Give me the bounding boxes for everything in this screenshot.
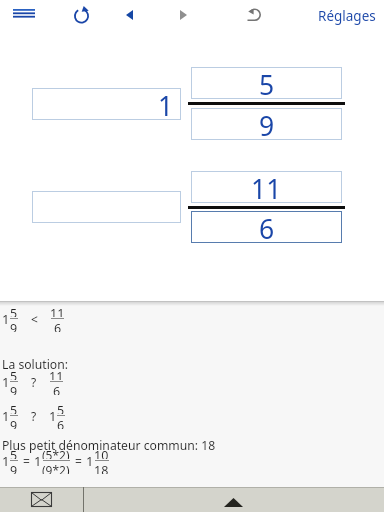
button[interactable]: [5, 1, 43, 27]
button[interactable]: [66, 1, 96, 29]
staticText: =: [75, 453, 82, 469]
staticText: 9: [10, 462, 18, 474]
staticText: 6: [57, 417, 65, 429]
staticText: (9*2): [42, 462, 70, 474]
staticText: 1: [2, 452, 10, 470]
staticText: 6: [259, 211, 275, 243]
button[interactable]: [32, 191, 181, 223]
staticText: 9: [10, 383, 18, 395]
staticText: 11: [251, 171, 282, 203]
button[interactable]: [116, 1, 142, 29]
staticText: 1: [34, 452, 42, 470]
button[interactable]: 1: [32, 88, 181, 120]
button[interactable]: 6: [191, 211, 342, 243]
staticText: 6: [53, 383, 61, 395]
staticText: 5: [259, 67, 275, 99]
staticText: (5*2): [42, 447, 70, 459]
staticText: 10: [94, 447, 109, 459]
staticText: 1: [2, 310, 10, 328]
button[interactable]: [170, 1, 196, 29]
staticText: 9: [10, 320, 18, 332]
staticText: 1: [86, 452, 94, 470]
staticText: Plus petit dénominateur commun: 18: [2, 437, 216, 454]
staticText: 5: [57, 402, 65, 414]
staticText: 5: [10, 305, 18, 317]
button[interactable]: 9: [191, 108, 342, 140]
button[interactable]: [84, 487, 384, 512]
staticText: 1: [49, 407, 57, 425]
staticText: 5: [10, 447, 18, 459]
staticText: ?: [31, 374, 37, 390]
button[interactable]: Réglages: [314, 0, 380, 30]
staticText: =: [23, 453, 30, 469]
staticText: <: [31, 311, 38, 327]
staticText: 5: [10, 402, 18, 414]
staticText: ?: [31, 408, 37, 424]
staticText: 11: [50, 305, 65, 317]
staticText: 18: [94, 462, 109, 474]
button[interactable]: 11: [191, 171, 342, 203]
staticText: 1: [2, 373, 10, 391]
staticText: 6: [54, 320, 62, 332]
staticText: 1: [158, 88, 174, 120]
staticText: 9: [10, 417, 18, 429]
staticText: 1: [2, 407, 10, 425]
staticText: Réglages: [318, 7, 376, 25]
button[interactable]: [0, 487, 83, 512]
button[interactable]: 5: [191, 67, 342, 99]
button[interactable]: [240, 1, 268, 29]
staticText: La solution:: [2, 356, 68, 373]
staticText: 11: [49, 368, 64, 380]
staticText: 9: [259, 108, 275, 140]
staticText: 5: [10, 368, 18, 380]
